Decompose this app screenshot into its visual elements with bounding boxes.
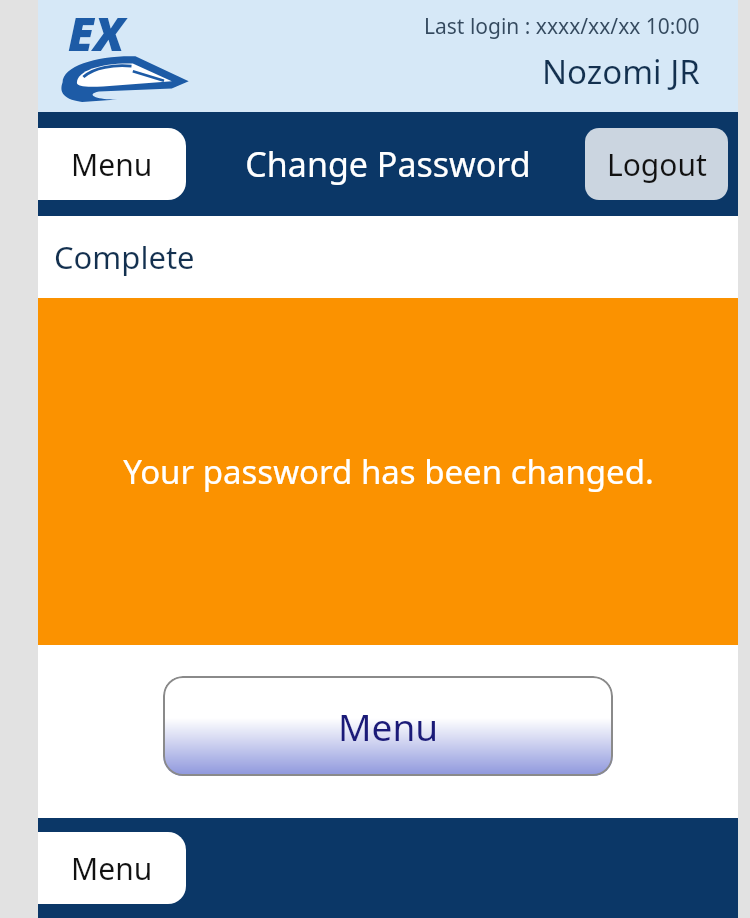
- staticText: EX: [68, 2, 125, 65]
- staticText: Logout: [607, 144, 707, 185]
- button[interactable]: Menu: [163, 676, 613, 776]
- staticText: Your password has been changed.: [123, 449, 654, 494]
- staticText: Menu: [71, 848, 153, 889]
- staticText: Last login : xxxx/xx/xx 10:00: [424, 12, 700, 41]
- staticText: Complete: [54, 236, 195, 278]
- staticText: Menu: [71, 144, 153, 185]
- staticText: Change Password: [245, 141, 531, 187]
- button[interactable]: Menu: [38, 832, 186, 904]
- button[interactable]: Menu: [38, 128, 186, 200]
- button[interactable]: Logout: [585, 128, 728, 200]
- staticText: Nozomi JR: [542, 49, 700, 94]
- staticText: Menu: [338, 701, 439, 751]
